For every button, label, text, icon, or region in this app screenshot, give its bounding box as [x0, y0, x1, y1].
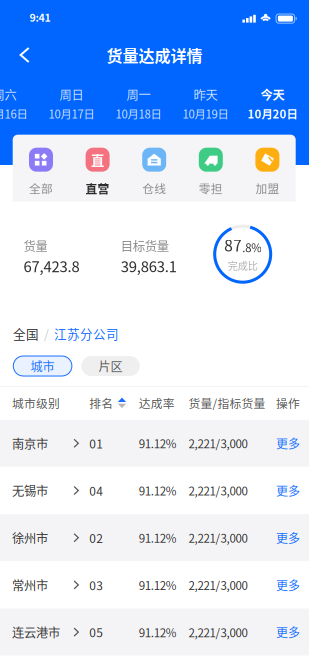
staticText: 仓线	[142, 180, 166, 197]
staticText: 2,221/3,000	[188, 482, 247, 499]
staticText: 货量	[23, 237, 47, 255]
staticText: 39,863.1	[121, 255, 177, 277]
button[interactable]: 连云港市	[0, 608, 309, 656]
staticText: 今天	[260, 85, 284, 103]
button[interactable]: 周六	[0, 78, 38, 123]
button[interactable]: 直	[69, 135, 126, 202]
button[interactable]: 加盟	[239, 135, 296, 202]
staticText: 更多	[276, 576, 300, 594]
staticText: /	[44, 324, 49, 342]
staticText: 91.12%	[139, 576, 177, 593]
staticText: 10月18日	[115, 105, 161, 122]
staticText: 更多	[276, 435, 300, 452]
staticText: 加盟	[255, 180, 279, 197]
staticText: 全国	[13, 324, 39, 342]
staticText: 更多	[276, 482, 300, 499]
staticText: 连云港市	[12, 623, 60, 641]
button[interactable]: 城市	[13, 356, 72, 376]
staticText: 徐州市	[12, 529, 48, 547]
staticText: 2,221/3,000	[188, 576, 247, 593]
staticText: 操作	[276, 394, 300, 411]
button[interactable]: 零担	[182, 135, 239, 202]
staticText: 91.12%	[139, 482, 177, 499]
staticText: 87	[224, 234, 242, 256]
button[interactable]: 周一	[105, 78, 172, 123]
staticText: 直营	[86, 180, 110, 197]
button[interactable]: 常州市	[0, 561, 309, 608]
staticText: 达成率	[139, 394, 175, 411]
button[interactable]: 南京市	[0, 420, 309, 467]
staticText: 零担	[199, 180, 223, 197]
staticText: .8%	[242, 239, 261, 255]
staticText: 直	[91, 150, 104, 169]
staticText: 67,423.8	[23, 255, 79, 277]
button[interactable]: 返回	[0, 39, 44, 71]
button[interactable]: 江苏分公司	[54, 324, 119, 342]
button[interactable]: 昨天	[172, 78, 239, 123]
staticText: 2,221/3,000	[188, 435, 247, 452]
staticText: 片区	[98, 357, 122, 375]
button[interactable]: 片区	[81, 356, 140, 376]
staticText: 05	[89, 623, 103, 641]
staticText: 南京市	[12, 434, 48, 452]
staticText: 2,221/3,000	[188, 529, 247, 546]
staticText: 昨天	[193, 85, 217, 103]
staticText: 10月19日	[182, 105, 228, 122]
staticText: 城市	[31, 357, 55, 375]
staticText: 城市级别	[12, 394, 60, 411]
staticText: 10月20日	[247, 105, 297, 122]
button[interactable]: 全部	[13, 135, 69, 202]
staticText: 目标货量	[121, 237, 169, 255]
button[interactable]: 全国	[13, 324, 39, 342]
staticText: 周日	[59, 85, 83, 103]
staticText: 常州市	[12, 576, 48, 594]
button[interactable]: 徐州市	[0, 514, 309, 561]
staticText: 91.12%	[139, 435, 177, 452]
button[interactable]: 今天	[239, 78, 306, 123]
staticText: 货量/指标货量	[188, 394, 265, 411]
staticText: 货量达成详情	[106, 43, 202, 67]
staticText: 10月16日	[0, 105, 27, 122]
staticText: 9:41	[29, 9, 50, 25]
staticText: 周六	[0, 85, 16, 103]
staticText: 江苏分公司	[54, 324, 119, 342]
staticText: 排名	[89, 394, 113, 411]
staticText: 91.12%	[139, 529, 177, 546]
staticText: 2,221/3,000	[188, 624, 247, 640]
staticText: 更多	[276, 529, 300, 546]
staticText: 完成比	[228, 258, 258, 273]
button[interactable]: 周日	[38, 78, 105, 123]
staticText: 无锡市	[12, 482, 48, 499]
staticText: 01	[89, 435, 103, 452]
staticText: 10月17日	[48, 105, 94, 122]
staticText: 04	[89, 482, 103, 499]
staticText: 周一	[126, 85, 150, 103]
button[interactable]: 仓线	[126, 135, 182, 202]
staticText: 02	[89, 529, 103, 546]
staticText: 更多	[276, 623, 300, 641]
staticText: 91.12%	[139, 624, 177, 640]
staticText: 全部	[29, 180, 53, 197]
staticText: 03	[89, 576, 103, 594]
button[interactable]: 无锡市	[0, 467, 309, 514]
